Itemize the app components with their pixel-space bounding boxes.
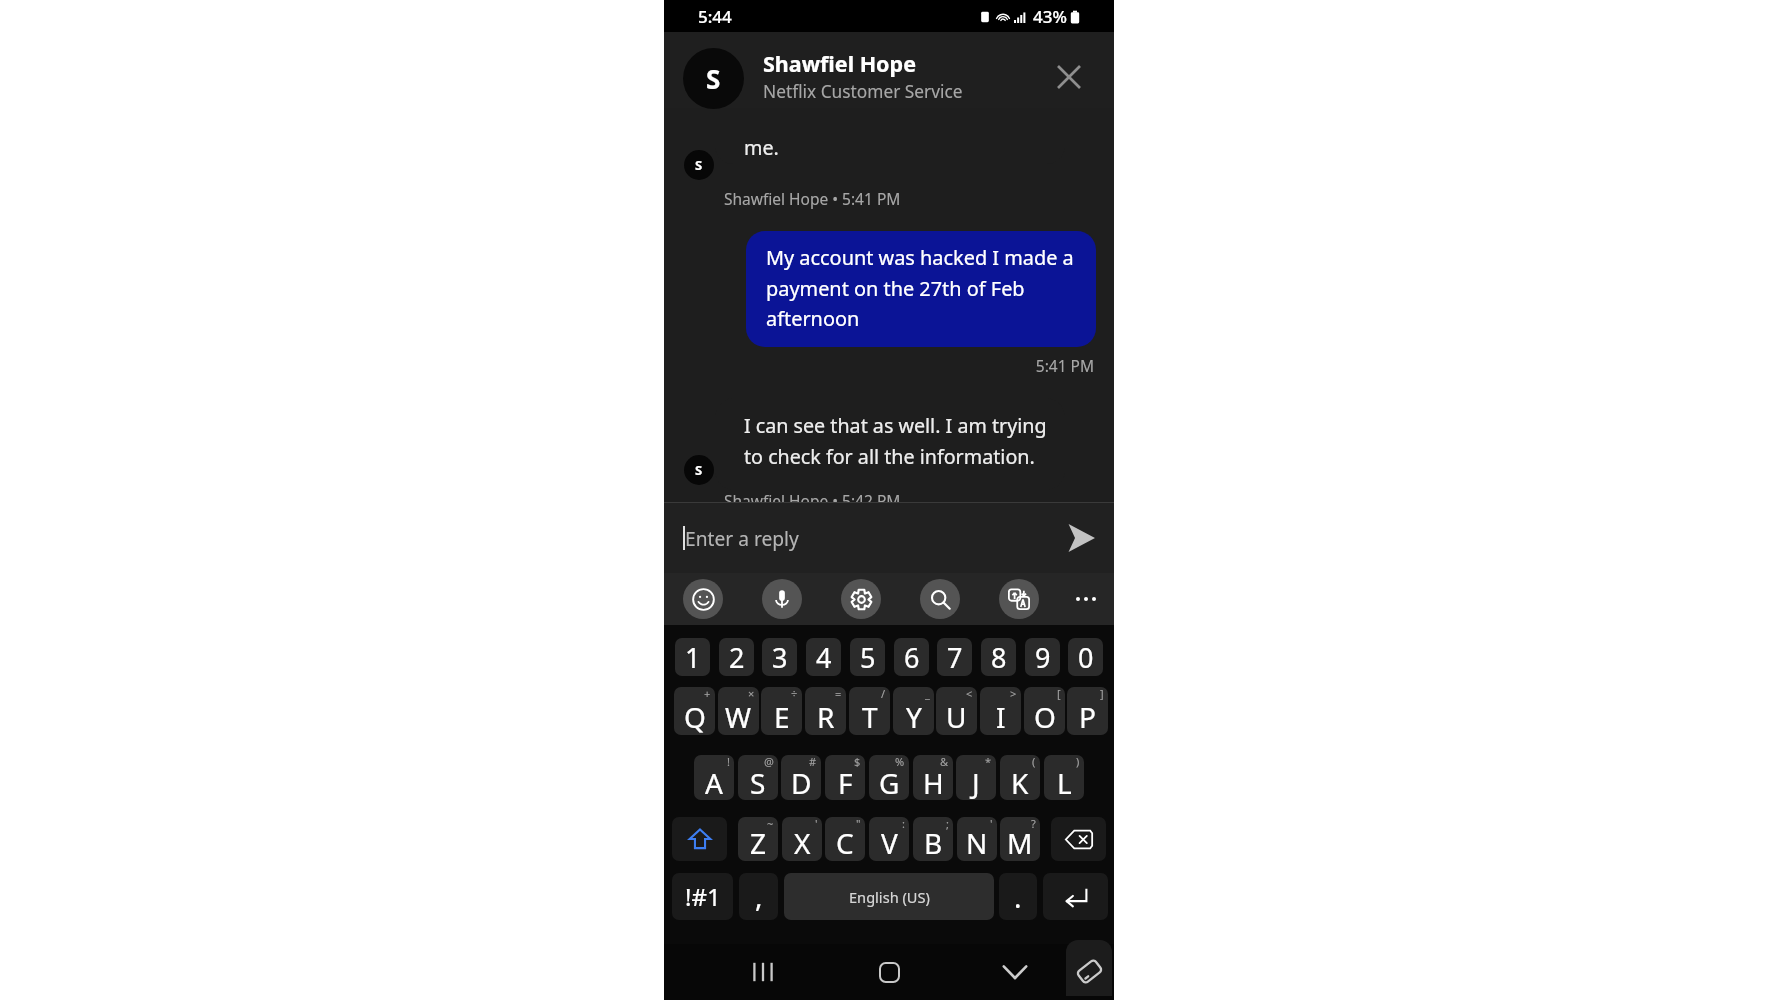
button[interactable]: L <box>1044 755 1084 800</box>
button[interactable]: B <box>913 817 953 861</box>
button[interactable]: Y <box>893 687 934 735</box>
button[interactable]: Period <box>999 873 1037 920</box>
staticText: J <box>972 764 980 800</box>
button[interactable]: S <box>664 32 1114 108</box>
button[interactable]: K <box>1000 755 1040 800</box>
staticText: English (US) <box>849 887 930 907</box>
staticText: * <box>985 755 992 769</box>
button[interactable]: F <box>825 755 865 800</box>
staticText: % <box>895 755 905 769</box>
staticText: !#1 <box>685 880 721 913</box>
staticText: 5 <box>860 639 876 676</box>
button[interactable]: Close <box>1047 55 1091 99</box>
button[interactable]: 7 <box>937 638 972 676</box>
button[interactable]: 4 <box>806 638 841 676</box>
button[interactable]: I <box>980 687 1021 735</box>
button[interactable]: Keyboard switcher <box>1066 940 1112 996</box>
button[interactable]: G <box>869 755 909 800</box>
button[interactable]: Enter <box>1043 873 1108 920</box>
staticText: P <box>1079 698 1096 735</box>
button[interactable]: Enter a reply <box>664 503 1056 573</box>
staticText: Shawfiel Hope • 5:42 PM <box>724 490 901 511</box>
staticText: 3 <box>772 639 788 676</box>
staticText: N <box>966 824 988 861</box>
button[interactable]: A <box>694 755 734 800</box>
staticText: _ <box>925 687 930 701</box>
staticText: B <box>924 824 943 861</box>
staticText: S <box>695 156 703 174</box>
staticText: O <box>1034 698 1056 735</box>
staticText: 43% <box>1033 5 1067 28</box>
staticText: D <box>791 764 812 800</box>
staticText: 1 <box>685 639 701 676</box>
button[interactable]: Comma <box>739 873 778 920</box>
staticText: G <box>879 764 900 800</box>
staticText: × <box>748 687 755 701</box>
staticText: ' <box>990 817 993 831</box>
button[interactable]: X <box>782 817 822 861</box>
staticText: 5:44 <box>698 5 732 28</box>
staticText: S <box>706 61 721 96</box>
staticText: ( <box>1032 755 1036 769</box>
button[interactable]: Settings <box>841 579 881 619</box>
button[interactable]: Recents <box>739 948 787 996</box>
button[interactable]: S <box>738 755 778 800</box>
button[interactable]: Translate <box>999 579 1039 619</box>
button[interactable]: H <box>913 755 953 800</box>
button[interactable]: Voice input <box>762 579 802 619</box>
button[interactable]: Space <box>784 873 994 920</box>
button[interactable]: I can see that as well. I am trying to c… <box>715 398 1065 490</box>
staticText: 6 <box>904 639 920 676</box>
button[interactable]: 3 <box>762 638 797 676</box>
button[interactable]: Symbols <box>672 873 733 920</box>
button[interactable]: me. <box>715 74 1065 164</box>
staticText: 8 <box>991 639 1007 676</box>
staticText: ] <box>1100 687 1104 701</box>
button[interactable]: 5 <box>850 638 885 676</box>
button[interactable]: 6 <box>894 638 929 676</box>
button[interactable]: V <box>869 817 909 861</box>
button[interactable]: W <box>718 687 759 735</box>
button[interactable]: More options <box>1066 579 1106 619</box>
button[interactable]: U <box>936 687 977 735</box>
staticText: F <box>838 764 853 800</box>
button[interactable]: 2 <box>719 638 754 676</box>
button[interactable]: Q <box>674 687 715 735</box>
button[interactable]: My account was hacked I made a payment o… <box>746 231 1096 347</box>
button[interactable]: 0 <box>1068 638 1103 676</box>
button[interactable]: Home <box>865 948 913 996</box>
staticText: 0 <box>1078 639 1094 676</box>
button[interactable]: P <box>1067 687 1108 735</box>
button[interactable]: Z <box>738 817 778 861</box>
button[interactable]: E <box>761 687 802 735</box>
staticText: K <box>1011 764 1029 800</box>
button[interactable]: R <box>805 687 846 735</box>
button[interactable]: Search <box>920 579 960 619</box>
button[interactable]: N <box>957 817 997 861</box>
button[interactable]: D <box>781 755 821 800</box>
button[interactable]: 9 <box>1025 638 1060 676</box>
button[interactable]: Backspace <box>1051 817 1106 861</box>
staticText: ~ <box>767 817 774 831</box>
button[interactable]: 1 <box>675 638 710 676</box>
button[interactable]: 8 <box>981 638 1016 676</box>
staticText: / <box>881 687 886 701</box>
button[interactable]: Send <box>1060 517 1102 559</box>
staticText: 9 <box>1035 639 1051 676</box>
staticText: & <box>940 755 949 769</box>
button[interactable]: M <box>1000 817 1040 861</box>
button[interactable]: J <box>956 755 996 800</box>
staticText: Q <box>684 698 706 735</box>
staticText: R <box>817 698 835 735</box>
staticText: Y <box>906 698 922 735</box>
staticText: . <box>1014 878 1022 916</box>
button[interactable]: Emoji <box>683 579 723 619</box>
staticText: $ <box>854 755 861 769</box>
staticText: W <box>725 698 752 735</box>
button[interactable]: C <box>825 817 865 861</box>
staticText: ; <box>946 817 949 831</box>
button[interactable]: O <box>1024 687 1065 735</box>
button[interactable]: T <box>849 687 890 735</box>
button[interactable]: Shift <box>672 817 727 861</box>
button[interactable]: Hide keyboard <box>991 948 1039 996</box>
